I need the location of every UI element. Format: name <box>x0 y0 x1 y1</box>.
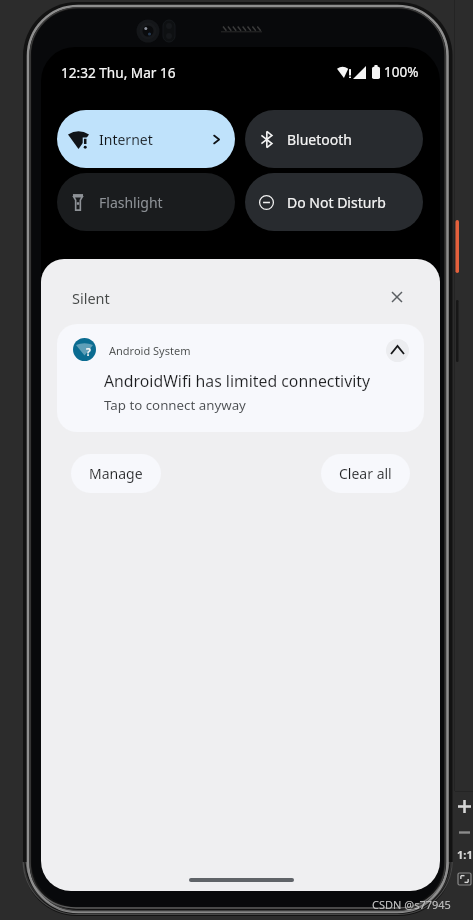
staticText: 1:1 <box>457 847 473 862</box>
button[interactable]: Zoom in <box>456 793 473 819</box>
staticText: Android System <box>109 343 191 358</box>
button[interactable]: Clear all <box>321 454 410 493</box>
staticText: Internet <box>99 130 153 149</box>
button[interactable]: Zoom out <box>456 821 473 843</box>
button[interactable]: Fit to screen <box>456 868 473 890</box>
staticText: 100% <box>384 63 419 81</box>
staticText: Tap to connect anyway <box>104 396 246 414</box>
staticText: ? <box>86 345 91 359</box>
button[interactable]: Home gesture bar <box>161 869 321 891</box>
staticText: AndroidWifi has limited connectivity <box>104 370 371 392</box>
staticText: Silent <box>72 288 110 307</box>
button[interactable]: Internet <box>57 110 235 168</box>
button[interactable]: Manage <box>71 454 161 493</box>
staticText: Flashlight <box>99 193 163 212</box>
button[interactable]: Bluetooth <box>245 110 423 168</box>
staticText: Do Not Disturb <box>287 193 386 212</box>
button[interactable]: Flashlight <box>57 173 235 231</box>
button[interactable]: Actual size <box>456 844 473 864</box>
staticText: Manage <box>89 464 143 483</box>
button[interactable]: ? <box>57 324 424 432</box>
staticText: Bluetooth <box>287 130 352 149</box>
button[interactable]: Do Not Disturb <box>245 173 423 231</box>
staticText: Clear all <box>339 464 392 483</box>
button[interactable]: Collapse <box>386 339 409 362</box>
staticText: 12:32 Thu, Mar 16 <box>61 63 176 82</box>
staticText: CSDN @s77945 <box>372 897 451 912</box>
button[interactable]: Close <box>383 283 411 311</box>
